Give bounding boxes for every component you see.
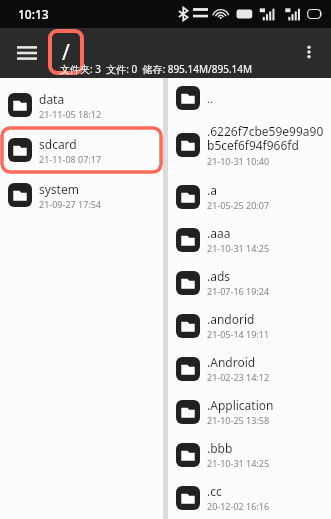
staticText: 21-10-31 14:25 — [207, 242, 270, 254]
button[interactable]: data — [0, 82, 163, 128]
staticText: .Application — [207, 397, 274, 413]
button[interactable]: .. — [168, 81, 331, 115]
button[interactable]: .6226f7cbe59e99a90b5cef6f94f966fd — [168, 115, 331, 175]
staticText: .. — [207, 91, 213, 106]
button[interactable]: .ads — [168, 261, 331, 304]
staticText: .ads — [207, 268, 231, 284]
staticText: 21-10-31 14:25 — [207, 457, 270, 469]
staticText: 21-10-31 10:40 — [207, 155, 270, 167]
staticText: .cc — [207, 483, 222, 499]
staticText: 21-05-25 20:07 — [207, 199, 270, 211]
staticText: .6226f7cbe59e99a90b5cef6f94f966fd — [207, 123, 328, 154]
staticText: 21-11-08 07:17 — [39, 153, 102, 165]
button[interactable]: system — [0, 172, 163, 218]
staticText: 10:13 — [18, 6, 49, 22]
button[interactable]: .cc — [168, 476, 331, 519]
button[interactable]: .Application — [168, 390, 331, 433]
button[interactable]: .Android — [168, 347, 331, 390]
staticText: 21-05-14 19:11 — [207, 328, 270, 340]
button[interactable]: / — [50, 31, 82, 73]
staticText: .a — [207, 182, 217, 198]
staticText: 21-02-23 14:12 — [207, 371, 270, 383]
staticText: 21-07-16 19:24 — [207, 285, 270, 297]
staticText: system — [39, 181, 79, 197]
staticText: / — [62, 38, 70, 67]
staticText: .andorid — [207, 311, 255, 327]
button[interactable]: Menu — [10, 36, 44, 70]
button[interactable]: .bbb — [168, 433, 331, 476]
staticText: 21-09-27 17:54 — [39, 198, 102, 210]
staticText: .aaa — [207, 225, 231, 241]
staticText: .Android — [207, 354, 256, 370]
button[interactable]: sdcard — [2, 128, 161, 172]
staticText: .bbb — [207, 440, 233, 456]
staticText: 21-10-25 13:58 — [207, 414, 270, 426]
button[interactable]: .aaa — [168, 218, 331, 261]
staticText: sdcard — [39, 136, 77, 152]
button[interactable]: More options — [293, 36, 325, 68]
staticText: 文件夹: 3 文件: 0 储存: 895.14M/895.14M — [60, 62, 253, 76]
staticText: data — [39, 91, 65, 107]
staticText: 21-11-05 18:12 — [39, 108, 102, 120]
button[interactable]: .andorid — [168, 304, 331, 347]
button[interactable]: .a — [168, 175, 331, 218]
staticText: 20-12-02 16:16 — [207, 500, 270, 512]
